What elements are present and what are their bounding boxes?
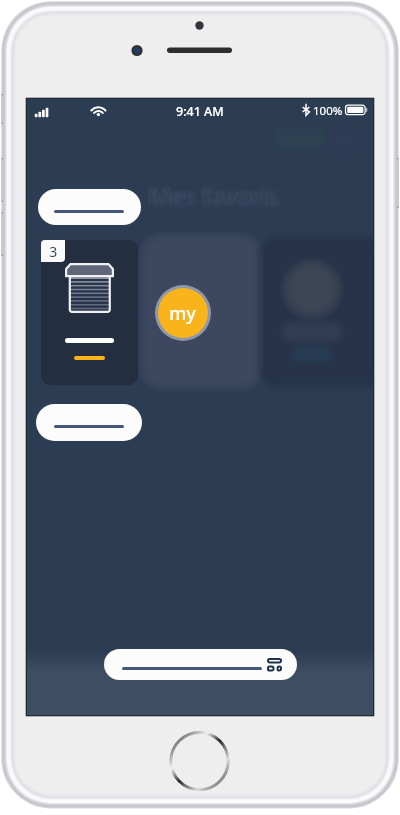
staticText: Mes favoris bbox=[147, 178, 277, 211]
staticText: Mes favoris bbox=[149, 179, 279, 212]
other: Dashboard bbox=[267, 658, 282, 672]
staticText: Mes favoris bbox=[149, 176, 279, 209]
staticText: Mes favoris bbox=[149, 182, 279, 215]
staticText: Mes favoris bbox=[151, 180, 281, 213]
button[interactable]: my bbox=[158, 288, 208, 338]
staticText: Mes favoris bbox=[145, 179, 275, 212]
staticText: 3 bbox=[49, 241, 58, 261]
staticText: Mes favoris bbox=[153, 179, 283, 212]
staticText: 9:41 AM bbox=[176, 103, 224, 120]
staticText: Mes favoris bbox=[147, 180, 277, 213]
button[interactable]: Dashboard bbox=[104, 649, 297, 680]
staticText: my bbox=[169, 301, 196, 326]
button[interactable] bbox=[41, 240, 138, 385]
button[interactable] bbox=[36, 404, 142, 441]
staticText: Mes favoris bbox=[146, 181, 276, 214]
staticText: Mes favoris bbox=[152, 181, 282, 214]
staticText: Mes favoris bbox=[151, 178, 281, 211]
button[interactable] bbox=[38, 189, 141, 225]
staticText: Mes favoris bbox=[152, 177, 282, 210]
staticText: Mes favoris bbox=[146, 177, 276, 210]
staticText: 100% bbox=[313, 103, 343, 119]
